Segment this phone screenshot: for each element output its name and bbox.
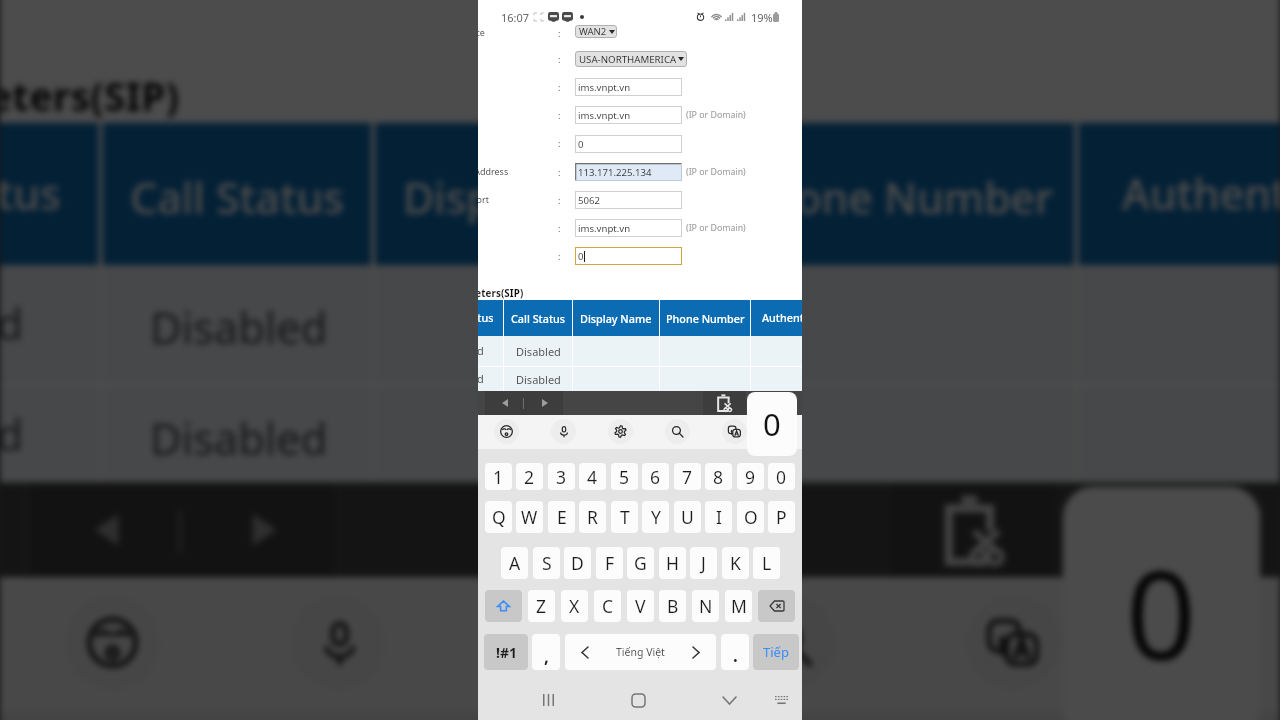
button[interactable]: 113.171.225.134 — [575, 163, 682, 181]
staticText: X — [569, 594, 580, 618]
button[interactable]: 5062 — [575, 191, 682, 209]
button[interactable]: WAN2 — [575, 25, 617, 38]
button[interactable]: E — [548, 501, 575, 533]
button[interactable]: Tiếng Việt — [565, 634, 716, 670]
button[interactable]: Settings — [514, 593, 612, 692]
button[interactable]: P — [768, 501, 795, 533]
staticText: Registration Parameters(SIP) — [478, 287, 524, 300]
button[interactable]: ims.vnpt.vn — [575, 219, 682, 237]
button[interactable]: Display Name — [573, 300, 659, 336]
button[interactable]: 6 — [642, 463, 669, 490]
staticText: 1 — [493, 465, 504, 489]
button[interactable]: J — [690, 547, 717, 579]
button[interactable]: R — [579, 501, 606, 533]
button[interactable]: Translate — [964, 593, 1063, 692]
button[interactable] — [485, 590, 522, 622]
button[interactable]: O — [737, 501, 764, 533]
staticText: U — [681, 505, 694, 529]
button[interactable]: Z — [528, 590, 555, 622]
button[interactable]: Call Status — [103, 123, 371, 265]
button[interactable]: H — [659, 547, 686, 579]
button[interactable]: Search — [665, 419, 690, 444]
button[interactable]: 3 — [548, 463, 575, 490]
button[interactable]: 0 — [768, 463, 795, 490]
staticText: Disabled — [150, 407, 328, 467]
button[interactable]: Keyboard layout — [767, 686, 795, 714]
button[interactable]: Voice input — [288, 593, 387, 692]
button[interactable]: Voice input — [551, 419, 576, 444]
button[interactable]: 0 — [575, 247, 682, 265]
button[interactable]: X — [561, 590, 588, 622]
button[interactable]: Phone Number — [660, 300, 750, 336]
button[interactable]: Cut — [703, 391, 746, 415]
button[interactable] — [758, 590, 795, 622]
button[interactable]: 1 — [485, 463, 512, 490]
staticText: R — [587, 505, 598, 529]
button[interactable]: ims.vnpt.vn — [575, 106, 682, 124]
button[interactable]: G — [627, 547, 654, 579]
button[interactable]: , — [532, 634, 560, 670]
button[interactable]: USA-NORTHAMERICA — [575, 51, 687, 67]
button[interactable]: 7 — [674, 463, 701, 490]
button[interactable]: D — [564, 547, 591, 579]
button[interactable]: F — [596, 547, 623, 579]
button[interactable]: !#1 — [484, 634, 528, 670]
button[interactable]: Y — [642, 501, 669, 533]
staticText: N — [699, 594, 713, 618]
button[interactable]: Q — [485, 501, 512, 533]
button[interactable]: V — [627, 590, 654, 622]
button[interactable]: L — [753, 547, 780, 579]
button[interactable]: Next — [186, 482, 340, 577]
button[interactable]: Home — [624, 686, 652, 714]
button[interactable]: 5 — [611, 463, 638, 490]
button[interactable]: Next — [525, 391, 564, 415]
button[interactable]: Call Status — [504, 300, 572, 336]
button[interactable]: T — [611, 501, 638, 533]
staticText: Phone Number — [743, 166, 1055, 226]
button[interactable]: 2 — [516, 463, 543, 490]
staticText: H — [666, 551, 679, 575]
button[interactable]: Settings — [608, 419, 633, 444]
button[interactable]: S — [533, 547, 560, 579]
button[interactable]: 9 — [737, 463, 764, 490]
button[interactable]: Previous — [28, 482, 182, 577]
button[interactable]: Hide keyboard — [715, 686, 743, 714]
button[interactable]: I — [705, 501, 732, 533]
staticText: Call Status — [130, 166, 348, 226]
button[interactable]: Recents — [534, 686, 562, 714]
button[interactable]: Emoji — [494, 419, 519, 444]
button[interactable]: K — [722, 547, 749, 579]
button[interactable]: Status — [478, 300, 503, 336]
staticText: 0 — [578, 250, 584, 263]
button[interactable]: C — [594, 590, 621, 622]
staticText: K — [730, 551, 741, 575]
staticText: 7 — [682, 465, 693, 489]
staticText: 113.171.225.134 — [578, 166, 652, 179]
staticText: : — [558, 109, 561, 121]
staticText: : — [558, 27, 561, 39]
button[interactable]: Tiếp — [753, 634, 799, 670]
button[interactable]: A — [501, 547, 528, 579]
button[interactable]: U — [674, 501, 701, 533]
button[interactable]: 8 — [705, 463, 732, 490]
button[interactable]: Display Name — [375, 123, 715, 265]
button[interactable]: Previous — [485, 391, 524, 415]
button[interactable]: W — [516, 501, 543, 533]
button[interactable]: 0 — [575, 135, 682, 153]
button[interactable]: ims.vnpt.vn — [575, 78, 682, 96]
button[interactable]: Phone Number — [719, 123, 1075, 265]
button[interactable]: M — [725, 590, 752, 622]
button[interactable]: Status — [0, 123, 99, 265]
button[interactable]: B — [659, 590, 686, 622]
staticText: J — [701, 551, 706, 575]
button[interactable]: Search — [739, 593, 838, 692]
button[interactable]: Authentication — [1079, 123, 1280, 265]
button[interactable]: Emoji — [63, 593, 162, 692]
button[interactable]: . — [721, 634, 749, 670]
button[interactable]: N — [692, 590, 719, 622]
button[interactable]: Authentication — [751, 300, 802, 336]
button[interactable]: Cut — [889, 482, 1059, 577]
button[interactable]: Translate — [722, 419, 747, 444]
button[interactable]: 4 — [579, 463, 606, 490]
staticText: (IP or Domain) — [686, 109, 746, 121]
